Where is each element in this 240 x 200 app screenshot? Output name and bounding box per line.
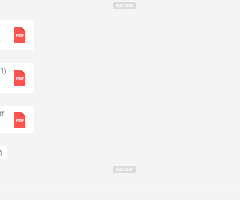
button[interactable]: 昨天 23:37 xyxy=(113,166,136,173)
button[interactable]: 需求评审会议纪要.pdf xyxy=(0,106,34,133)
staticText: 好的，收到，我稍后处理 xyxy=(0,149,4,157)
staticText: PDF xyxy=(16,33,24,39)
staticText: PDF xyxy=(16,118,24,124)
staticText: 昨天 23:50 xyxy=(116,3,133,8)
button[interactable]: 好的，收到，我稍后处理 xyxy=(0,146,7,159)
staticText: 项目需求说明书文档(1) xyxy=(0,66,7,75)
button[interactable]: 项目需求说明书文档(1) xyxy=(0,63,34,93)
button[interactable]: 用户调研报告(1).pdf xyxy=(0,20,34,50)
staticText: PDF xyxy=(16,76,24,82)
button[interactable]: 昨天 23:50 xyxy=(113,2,136,9)
staticText: 昨天 23:37 xyxy=(116,167,133,172)
staticText: 需求评审会议纪要.pdf xyxy=(0,109,4,118)
